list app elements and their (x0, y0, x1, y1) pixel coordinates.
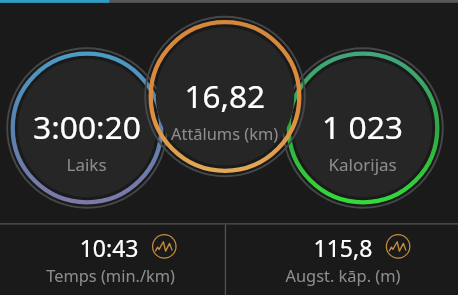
button[interactable]: Kalorijas 1023 (283, 17, 457, 211)
button[interactable]: Temps 10:43 min./km (0, 224, 225, 295)
button[interactable]: Attālums 16,82 km (145, 17, 305, 178)
button[interactable]: Laiks 3:00:20 (0, 17, 174, 211)
button[interactable]: Augstuma kāpums 115,8 m (226, 224, 458, 295)
